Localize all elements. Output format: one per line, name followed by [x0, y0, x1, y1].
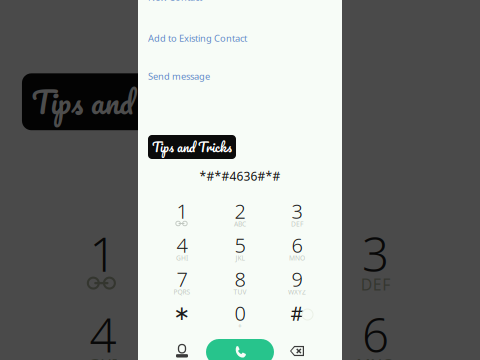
staticText: 1 — [176, 198, 187, 224]
button[interactable]: 2 — [217, 202, 263, 228]
staticText: New Contact — [148, 0, 202, 3]
staticText: New Contact — [148, 0, 202, 3]
button[interactable]: 8 — [217, 270, 263, 296]
button[interactable]: 2 — [217, 202, 263, 228]
staticText: 2 — [234, 198, 245, 224]
staticText: + — [238, 322, 242, 330]
button[interactable]: 4 — [159, 236, 205, 262]
button[interactable]: Call — [206, 339, 274, 360]
staticText: 6 — [291, 232, 302, 258]
staticText: Send message — [148, 70, 210, 82]
button[interactable]: # — [274, 304, 320, 330]
button[interactable]: New Contact — [148, 0, 202, 3]
staticText: 3 — [291, 198, 302, 224]
staticText: 9 — [291, 266, 302, 292]
staticText: ABC — [234, 220, 246, 228]
button[interactable]: 3 — [274, 202, 320, 228]
staticText: Tips and Tricks — [152, 136, 232, 158]
button[interactable]: 5 — [217, 236, 263, 262]
staticText: 8 — [234, 266, 245, 292]
staticText: ∗ — [173, 302, 190, 324]
button[interactable]: 8 — [217, 270, 263, 296]
staticText: ∗ — [173, 302, 190, 324]
button[interactable]: Add to contacts — [169, 340, 195, 360]
staticText: PQRS — [173, 288, 190, 296]
staticText: 5 — [234, 232, 245, 258]
button[interactable]: Delete — [284, 344, 310, 358]
staticText: Add to Existing Contact — [148, 32, 247, 44]
staticText: TUV — [233, 288, 246, 296]
button[interactable]: 6 — [274, 236, 320, 262]
button[interactable]: 3 — [274, 202, 320, 228]
button[interactable]: ∗ — [159, 304, 205, 330]
staticText: GHI — [176, 254, 188, 262]
staticText: 3 — [291, 198, 302, 224]
staticText: DEF — [291, 220, 303, 228]
button[interactable]: 9 — [274, 270, 320, 296]
staticText: *#*#4636#*# — [199, 168, 280, 184]
staticText: 8 — [234, 266, 245, 292]
button[interactable]: Add to Existing Contact — [148, 32, 247, 44]
button[interactable]: 6 — [274, 236, 320, 262]
button[interactable]: 0 — [217, 304, 263, 330]
staticText: 9 — [291, 266, 302, 292]
staticText: 7 — [176, 266, 187, 292]
staticText: PQRS — [173, 288, 190, 296]
button[interactable]: 1 — [159, 202, 205, 228]
button[interactable]: 5 — [217, 236, 263, 262]
button[interactable]: 7 — [159, 270, 205, 296]
staticText: 0 — [234, 300, 245, 326]
staticText: 5 — [234, 232, 245, 258]
staticText: 4 — [176, 232, 187, 258]
staticText: Add to Existing Contact — [148, 32, 247, 44]
button[interactable]: 9 — [274, 270, 320, 296]
staticText: GHI — [176, 254, 188, 262]
staticText: Send message — [148, 70, 210, 82]
button[interactable]: # — [274, 304, 320, 330]
staticText: DEF — [291, 220, 303, 228]
staticText: *#*#4636#*# — [199, 168, 280, 184]
button[interactable]: Send message — [148, 70, 210, 82]
button[interactable]: Add to contacts — [169, 340, 195, 360]
staticText: 6 — [291, 232, 302, 258]
staticText: JKL — [235, 254, 244, 262]
staticText: TUV — [233, 288, 246, 296]
button[interactable]: 7 — [159, 270, 205, 296]
staticText: 0 — [234, 300, 245, 326]
staticText: Tips and Tricks — [152, 136, 232, 158]
button[interactable]: 0 — [217, 304, 263, 330]
staticText: 1 — [176, 198, 187, 224]
staticText: 4 — [176, 232, 187, 258]
staticText: # — [290, 300, 303, 326]
button[interactable]: Add to Existing Contact — [148, 32, 247, 44]
staticText: + — [238, 322, 242, 330]
button[interactable]: ∗ — [159, 304, 205, 330]
staticText: ABC — [234, 220, 246, 228]
staticText: WXYZ — [288, 288, 306, 296]
staticText: JKL — [235, 254, 244, 262]
button[interactable]: Send message — [148, 70, 210, 82]
button[interactable]: Call — [206, 339, 274, 360]
staticText: # — [290, 300, 303, 326]
staticText: MNO — [289, 254, 305, 262]
button[interactable]: 4 — [159, 236, 205, 262]
staticText: MNO — [289, 254, 305, 262]
staticText: 2 — [234, 198, 245, 224]
button[interactable]: New Contact — [148, 0, 202, 3]
button[interactable]: 1 — [159, 202, 205, 228]
staticText: WXYZ — [288, 288, 306, 296]
staticText: 7 — [176, 266, 187, 292]
button[interactable]: Delete — [284, 344, 310, 358]
